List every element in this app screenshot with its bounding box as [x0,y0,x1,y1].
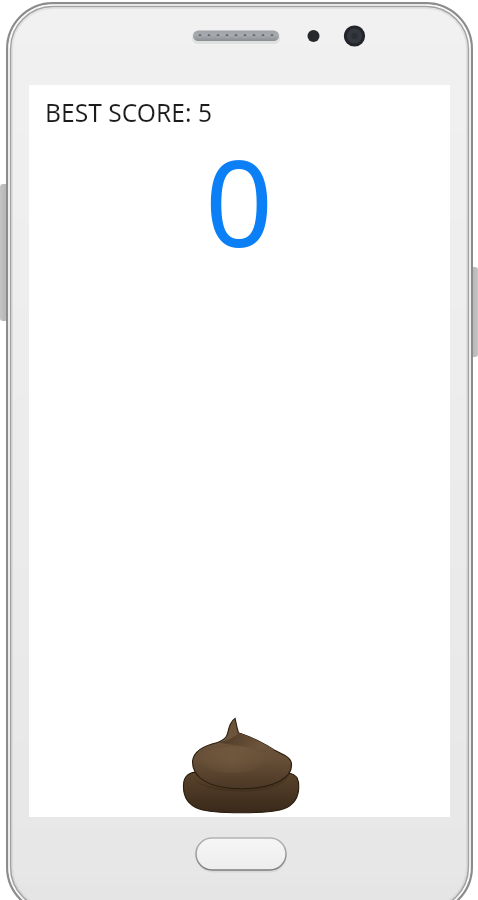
button[interactable]: Tap to jump [29,85,450,817]
button[interactable]: Poop character [183,718,299,813]
staticText: 0 [29,120,449,260]
staticText: BEST SCORE: 5 [45,96,213,130]
